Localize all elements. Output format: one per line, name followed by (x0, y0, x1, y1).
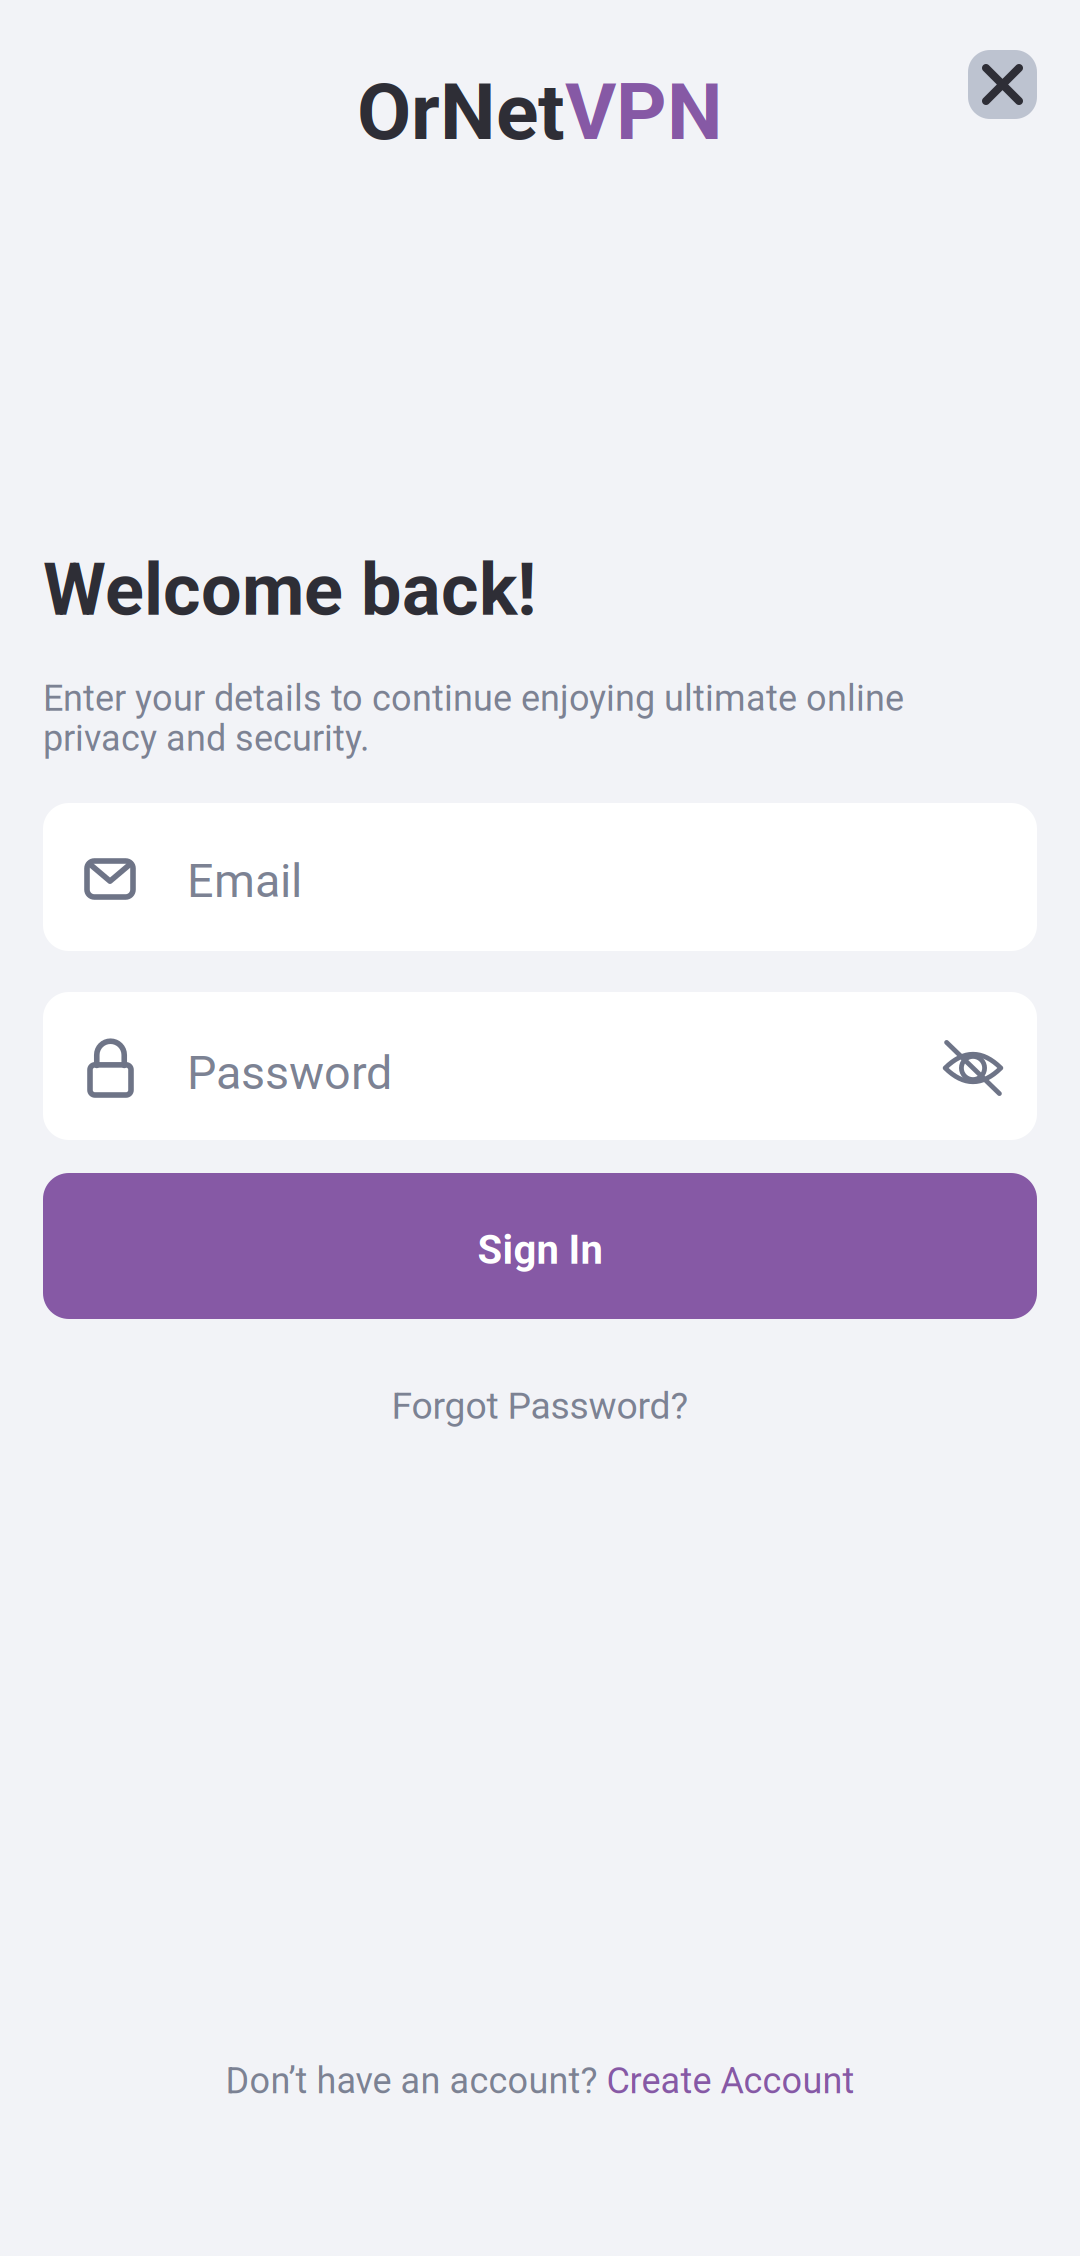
staticText: Forgot Password? (391, 1384, 688, 1428)
button[interactable]: Close (968, 50, 1037, 119)
staticText: Password (187, 1046, 392, 1100)
staticText: Sign In (477, 1227, 602, 1273)
staticText: Welcome back! (43, 548, 536, 632)
staticText: Email (187, 854, 302, 908)
button[interactable]: Forgot Password? (43, 1362, 1037, 1450)
button[interactable]: Don’t have an account? (0, 2040, 1080, 2122)
button[interactable]: Show password (932, 1027, 1010, 1105)
staticText: Enter your details to continue enjoying … (43, 678, 904, 759)
staticText: VPN (565, 66, 723, 158)
staticText: Don’t have an account? (225, 2060, 606, 2102)
staticText: Create Account (606, 2060, 854, 2102)
staticText: OrNet (357, 66, 565, 158)
button[interactable]: Sign In (43, 1173, 1037, 1319)
